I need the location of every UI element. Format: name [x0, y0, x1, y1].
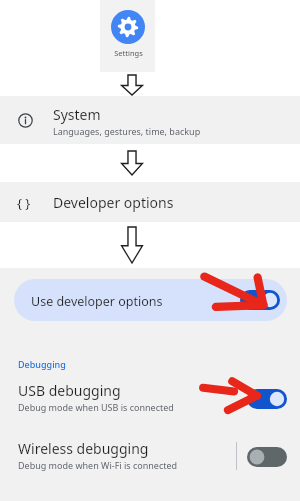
staticText: Settings: [114, 48, 143, 58]
button[interactable]: { }: [0, 182, 300, 222]
staticText: Developer options: [53, 193, 174, 212]
staticText: USB debugging: [18, 381, 121, 400]
staticText: Use developer options: [31, 293, 163, 310]
staticText: System: [53, 105, 101, 124]
button[interactable]: Use developer options: [14, 279, 287, 321]
button[interactable]: Wireless debugging: [0, 436, 300, 481]
staticText: Languages, gestures, time, backup: [53, 125, 201, 137]
staticText: Debugging: [18, 358, 66, 370]
button[interactable]: Settings app: [100, 0, 155, 72]
staticText: { }: [17, 194, 31, 212]
staticText: Debug mode when USB is connected: [18, 401, 174, 413]
button[interactable]: System: [0, 96, 300, 144]
staticText: Debug mode when Wi-Fi is connected: [18, 459, 178, 471]
button[interactable]: USB debugging: [0, 378, 300, 423]
staticText: Wireless debugging: [18, 439, 149, 458]
